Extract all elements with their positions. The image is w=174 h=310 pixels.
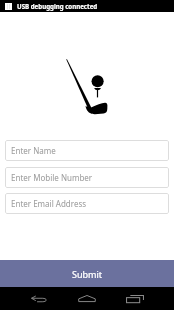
button[interactable]: Enter Email Address xyxy=(5,193,169,214)
button[interactable]: Recent apps xyxy=(111,287,159,310)
button[interactable]: Home xyxy=(63,287,111,310)
button[interactable]: Back xyxy=(15,287,63,310)
staticText: Enter Name xyxy=(11,145,56,156)
staticText: Submit xyxy=(72,268,103,280)
staticText: Enter Mobile Number xyxy=(11,172,93,183)
staticText: USB debugging connected xyxy=(17,2,98,10)
button[interactable]: Submit xyxy=(0,260,174,287)
button[interactable]: Enter Mobile Number xyxy=(5,167,169,188)
button[interactable]: Enter Name xyxy=(5,140,169,161)
staticText: Enter Email Address xyxy=(11,198,87,209)
